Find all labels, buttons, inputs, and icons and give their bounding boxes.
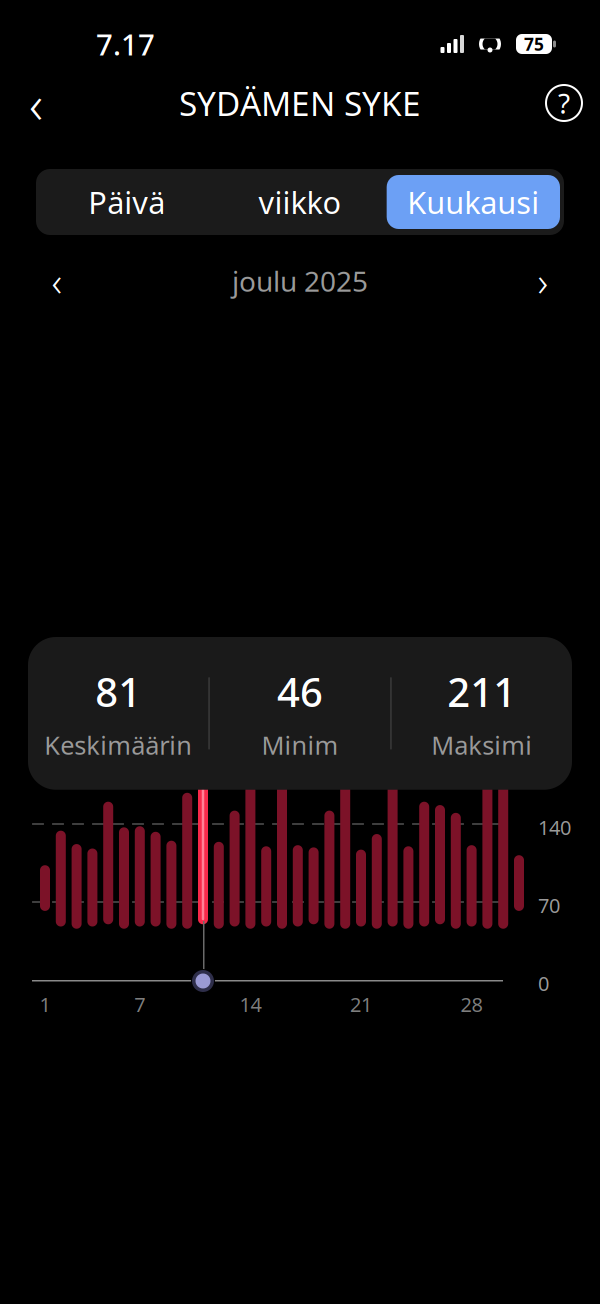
button[interactable]: Previous month xyxy=(30,259,84,303)
staticText: 46 xyxy=(277,665,323,718)
button[interactable]: Back xyxy=(8,75,64,131)
button[interactable]: viikko xyxy=(213,175,387,229)
staticText: 28 xyxy=(461,991,483,1018)
staticText: 1 xyxy=(39,991,50,1018)
staticText: 0 xyxy=(538,970,549,997)
button[interactable]: Kuukausi xyxy=(387,175,560,229)
staticText: viikko xyxy=(258,182,341,222)
staticText: 7.17 xyxy=(96,24,155,63)
staticText: ‹ xyxy=(29,68,43,138)
button[interactable]: Help xyxy=(536,75,592,131)
staticText: 14 xyxy=(239,991,261,1018)
staticText: 211 xyxy=(447,665,516,718)
staticText: 140 xyxy=(538,814,571,841)
staticText: 21 xyxy=(350,991,372,1018)
staticText: 75 xyxy=(524,32,544,55)
staticText: Minim xyxy=(261,728,338,762)
button[interactable]: Next month xyxy=(516,259,570,303)
staticText: Keskimäärin xyxy=(44,728,192,762)
staticText: 81 xyxy=(95,665,141,718)
button[interactable]: Päivä xyxy=(40,175,213,229)
staticText: joulu 2025 xyxy=(232,262,368,300)
staticText: Päivä xyxy=(88,182,165,222)
staticText: Maksimi xyxy=(431,728,532,762)
staticText: 7 xyxy=(134,991,145,1018)
staticText: Kuukausi xyxy=(407,182,539,222)
staticText: ‹ xyxy=(51,254,62,307)
staticText: 70 xyxy=(538,892,560,919)
staticText: ? xyxy=(558,84,570,122)
staticText: SYDÄMEN SYKE xyxy=(179,81,421,125)
staticText: › xyxy=(537,254,548,307)
